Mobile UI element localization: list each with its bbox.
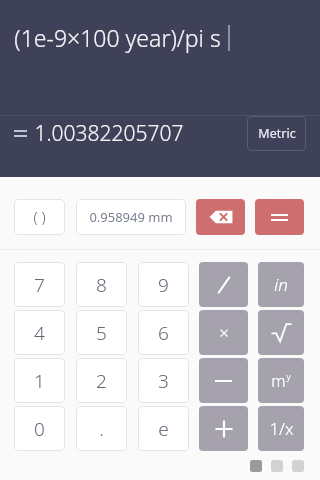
button[interactable]: ( ): [14, 199, 65, 235]
button[interactable]: 0: [14, 406, 65, 451]
staticText: 1/x: [269, 417, 294, 440]
button[interactable]: 3: [138, 358, 189, 403]
staticText: (1e-9×100 year)/pi s: [14, 22, 221, 53]
staticText: Metric: [258, 125, 296, 142]
button[interactable]: 2: [76, 358, 127, 403]
button[interactable]: 8: [76, 262, 127, 307]
staticText: 3: [158, 368, 169, 394]
staticText: m: [271, 370, 286, 392]
staticText: in: [274, 273, 288, 296]
button[interactable]: +: [199, 406, 248, 451]
button[interactable]: Equals: [255, 199, 304, 235]
button[interactable]: .: [76, 406, 127, 451]
staticText: 8: [96, 272, 107, 298]
staticText: 1: [34, 368, 45, 394]
staticText: 0: [34, 416, 45, 442]
staticText: .: [99, 416, 104, 442]
button[interactable]: 1: [14, 358, 65, 403]
button[interactable]: 0.958949 mm: [76, 199, 186, 235]
staticText: ( ): [33, 207, 46, 227]
button[interactable]: −: [199, 358, 248, 403]
button[interactable]: 4: [14, 310, 65, 355]
staticText: 1.00382205707: [34, 119, 184, 148]
staticText: 6: [158, 320, 169, 346]
staticText: 7: [34, 272, 45, 298]
staticText: 2: [96, 368, 107, 394]
button[interactable]: /: [199, 262, 248, 307]
button[interactable]: 5: [76, 310, 127, 355]
staticText: 4: [34, 320, 45, 346]
staticText: ×: [219, 321, 229, 344]
button[interactable]: 1/x: [258, 406, 304, 451]
button[interactable]: Metric: [247, 116, 306, 151]
button[interactable]: m^y: [258, 358, 304, 403]
button[interactable]: 7: [14, 262, 65, 307]
staticText: 0.958949 mm: [89, 208, 173, 226]
staticText: 5: [96, 320, 107, 346]
button[interactable]: e: [138, 406, 189, 451]
button[interactable]: 9: [138, 262, 189, 307]
staticText: 9: [158, 272, 169, 298]
button[interactable]: ×: [199, 310, 248, 355]
staticText: e: [158, 416, 169, 442]
button[interactable]: Backspace: [196, 199, 245, 235]
button[interactable]: 6: [138, 310, 189, 355]
button[interactable]: in: [258, 262, 304, 307]
button[interactable]: √: [258, 310, 304, 355]
staticText: y: [286, 370, 291, 382]
